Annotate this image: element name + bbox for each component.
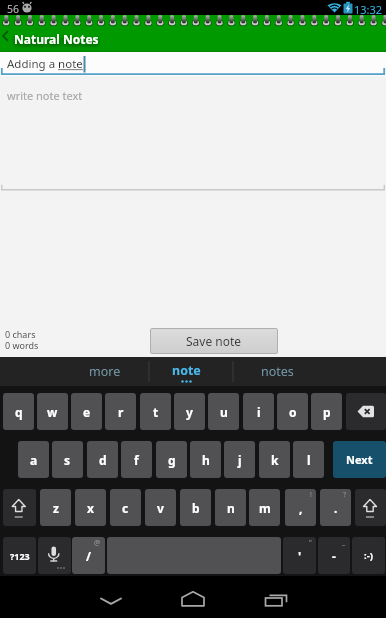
button[interactable]: o (277, 393, 308, 430)
staticText: u (220, 404, 228, 420)
staticText: @ (94, 538, 101, 548)
staticText: a (30, 452, 38, 468)
button[interactable]: w (37, 393, 68, 430)
button[interactable]: t (140, 393, 171, 430)
staticText: 0 chars (5, 328, 36, 340)
staticText: m (259, 500, 271, 516)
staticText: e (83, 404, 91, 420)
staticText: c (122, 500, 129, 516)
button[interactable] (0, 52, 386, 76)
staticText: notes (261, 363, 294, 380)
button[interactable] (0, 26, 12, 48)
button[interactable]: e (71, 393, 102, 430)
staticText: l (307, 452, 311, 468)
staticText: q (15, 404, 23, 420)
staticText: Natural Notes (14, 31, 99, 47)
staticText: b (192, 500, 200, 516)
button[interactable] (3, 489, 36, 526)
staticText: v (157, 500, 164, 516)
staticText: , (299, 500, 303, 516)
button[interactable]: z (40, 489, 71, 526)
button[interactable]: g (156, 441, 187, 478)
button[interactable] (173, 580, 213, 616)
staticText: - (332, 548, 336, 564)
staticText: n (227, 500, 235, 516)
staticText: o (289, 404, 297, 420)
staticText: ' (298, 548, 302, 564)
staticText: s (64, 452, 71, 468)
button[interactable] (346, 393, 386, 430)
button[interactable]: x (75, 489, 106, 526)
button[interactable]: m (249, 489, 280, 526)
button[interactable]: Save note (150, 328, 278, 354)
button[interactable]: h (190, 441, 221, 478)
button[interactable]: :-) (352, 537, 385, 574)
staticText: more (89, 363, 121, 380)
staticText: write note text (7, 88, 83, 103)
button[interactable]: r (105, 393, 136, 430)
button[interactable]: Next (333, 441, 386, 478)
button[interactable]: k (259, 441, 290, 478)
staticText: Save note (186, 333, 242, 349)
staticText: " (309, 538, 312, 548)
button[interactable]: a (18, 441, 49, 478)
button[interactable]: n (215, 489, 246, 526)
button[interactable]: j (224, 441, 255, 478)
button[interactable] (0, 76, 386, 191)
button[interactable]: c (110, 489, 141, 526)
staticText: Next (346, 452, 373, 467)
button[interactable] (355, 489, 386, 526)
button[interactable]: d (87, 441, 118, 478)
button[interactable]: note (151, 357, 221, 384)
button[interactable] (256, 580, 296, 616)
button[interactable]: , (285, 489, 316, 526)
staticText: h (202, 452, 210, 468)
staticText: i (257, 404, 261, 420)
button[interactable]: q (3, 393, 34, 430)
button[interactable]: v (145, 489, 176, 526)
staticText: w (47, 404, 58, 420)
button[interactable]: . (320, 489, 351, 526)
button[interactable]: - (318, 537, 350, 574)
staticText: :-) (364, 549, 373, 562)
staticText: g (168, 452, 176, 468)
button[interactable] (38, 537, 71, 574)
button[interactable]: f (121, 441, 152, 478)
button[interactable]: ' (283, 537, 316, 574)
staticText: ! (310, 490, 312, 500)
staticText: z (53, 500, 59, 516)
staticText: x (87, 500, 94, 516)
staticText: ? (343, 490, 347, 500)
staticText: j (238, 452, 242, 468)
staticText: t (153, 404, 159, 420)
button[interactable]: i (243, 393, 274, 430)
button[interactable]: ?123 (3, 537, 36, 574)
button[interactable]: more (70, 357, 140, 386)
staticText: 13:32 (354, 2, 383, 17)
staticText: p (323, 404, 331, 420)
staticText: Adding a note (7, 56, 83, 72)
staticText: / (86, 548, 91, 564)
staticText: y (186, 404, 193, 420)
staticText: note (172, 362, 201, 379)
staticText: r (118, 404, 124, 420)
button[interactable]: y (174, 393, 205, 430)
button[interactable]: p (311, 393, 342, 430)
staticText: k (271, 452, 279, 468)
button[interactable]: / (72, 537, 105, 574)
staticText: d (99, 452, 107, 468)
button[interactable]: notes (242, 357, 312, 386)
staticText: f (134, 452, 139, 468)
button[interactable]: b (180, 489, 211, 526)
button[interactable]: u (208, 393, 239, 430)
button[interactable]: s (52, 441, 83, 478)
button[interactable] (91, 580, 131, 616)
staticText: 0 words (5, 339, 39, 351)
button[interactable]: l (293, 441, 324, 478)
staticText: . (334, 500, 338, 516)
staticText: 56 (7, 2, 20, 16)
staticText: ?123 (10, 550, 30, 562)
staticText: _ (342, 538, 346, 548)
